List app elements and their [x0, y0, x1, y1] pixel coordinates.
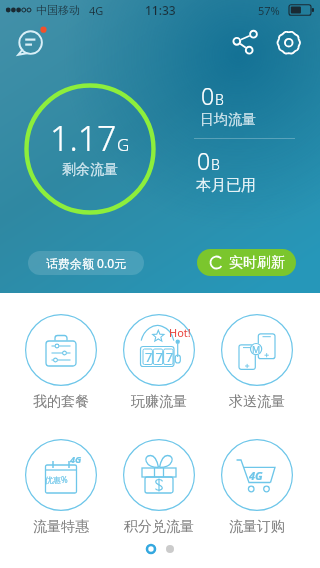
button[interactable]: 777: [111, 314, 207, 411]
button[interactable]: Settings: [274, 28, 303, 57]
button[interactable]: 4G: [209, 439, 305, 536]
staticText: 4G: [70, 453, 82, 465]
staticText: 777: [145, 348, 177, 366]
button[interactable]: 我的套餐: [13, 314, 109, 411]
staticText: 日均流量: [200, 111, 256, 129]
staticText: Hot!: [169, 325, 191, 340]
staticText: 积分兑流量: [124, 518, 194, 536]
staticText: G: [117, 133, 130, 156]
staticText: 1.17: [50, 115, 117, 161]
staticText: 话费余额 0.0元: [46, 255, 127, 271]
staticText: 我的套餐: [33, 393, 89, 411]
button[interactable]: M: [209, 314, 305, 411]
staticText: B: [211, 155, 220, 174]
button[interactable]: 实时刷新: [197, 249, 296, 276]
button[interactable]: 优惠%: [13, 439, 109, 536]
staticText: 0: [197, 145, 211, 176]
staticText: 本月已用: [196, 176, 256, 195]
staticText: M: [252, 343, 261, 355]
staticText: 57%: [258, 3, 280, 18]
staticText: 玩赚流量: [131, 393, 187, 411]
button[interactable]: Messages: [14, 26, 48, 60]
staticText: 流量特惠: [33, 518, 89, 536]
button[interactable]: 话费余额 0.0元: [28, 251, 144, 275]
staticText: 4G: [249, 468, 263, 483]
staticText: 优惠%: [45, 474, 68, 485]
staticText: 0: [201, 80, 215, 111]
staticText: 中国移动: [36, 3, 80, 17]
staticText: 剩余流量: [62, 161, 118, 179]
staticText: 11:33: [145, 2, 176, 18]
button[interactable]: 积分兑流量: [111, 439, 207, 536]
staticText: B: [215, 90, 224, 109]
staticText: 4G: [89, 3, 104, 18]
staticText: 实时刷新: [229, 254, 285, 272]
staticText: 求送流量: [229, 393, 285, 411]
staticText: 流量订购: [229, 518, 285, 536]
button[interactable]: Share: [228, 27, 260, 59]
